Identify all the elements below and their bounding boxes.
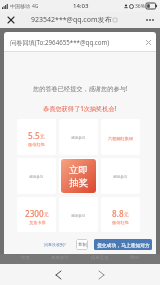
button[interactable]: 感谢参与 xyxy=(59,197,98,232)
staticText: 问卷回填(To:2964655***@qq.com) xyxy=(10,38,110,46)
staticText: 8.8 xyxy=(112,208,124,219)
staticText: 36% xyxy=(135,3,145,10)
button[interactable]: Close xyxy=(0,12,21,28)
button[interactable]: 我的 xyxy=(130,254,139,261)
staticText: 感谢参与 xyxy=(29,175,44,180)
button[interactable]: More options xyxy=(140,12,160,28)
button[interactable]: 首页 xyxy=(21,254,30,261)
button[interactable]: 感谢参与 xyxy=(59,119,98,155)
button[interactable]: 感谢参与 xyxy=(17,158,56,194)
staticText: 5.5 xyxy=(28,130,40,141)
staticText: 您的答卷已经提交，感谢您的参与! xyxy=(33,84,128,92)
button[interactable]: 立即 抽奖 xyxy=(61,159,96,193)
staticText: 复制 xyxy=(78,242,87,248)
button[interactable]: 表单设计 xyxy=(51,254,69,261)
staticText: 微信红包 xyxy=(28,142,45,147)
button[interactable]: 感谢参与 xyxy=(101,158,140,194)
button[interactable]: 问卷没收到? xyxy=(44,242,66,247)
staticText: 微信红包 xyxy=(112,220,129,225)
staticText: 立即 抽奖 xyxy=(69,164,88,188)
button[interactable]: 问卷互送 xyxy=(91,254,109,261)
button[interactable]: 提交成功，马上通知对方 xyxy=(94,239,152,250)
button[interactable]: Back xyxy=(48,264,68,285)
staticText: 恭喜您获得了1次抽奖机会! xyxy=(43,104,117,112)
button[interactable]: 六朝网红集锦 xyxy=(101,119,140,155)
button[interactable]: 2300 xyxy=(17,197,56,232)
staticText: 923542***@qq.com发布 xyxy=(31,15,112,25)
staticText: 4G xyxy=(32,3,39,10)
button[interactable]: Close page xyxy=(143,37,153,47)
staticText: 感谢参与 xyxy=(113,175,128,180)
staticText: 感谢参与 xyxy=(71,136,86,141)
staticText: 京东卡券 xyxy=(29,220,46,225)
staticText: 元 xyxy=(40,134,45,140)
staticText: 14:03 xyxy=(73,2,89,10)
staticText: 2300 xyxy=(25,208,44,219)
button[interactable]: Copy link xyxy=(76,239,88,250)
button[interactable]: 5.5 xyxy=(17,119,56,155)
staticText: 六朝网红集锦 xyxy=(108,136,134,141)
button[interactable]: 8.8 xyxy=(101,197,140,232)
button[interactable]: Forward xyxy=(91,264,111,285)
staticText: 元 xyxy=(124,212,129,218)
staticText: 元 xyxy=(44,212,49,218)
staticText: 感谢参与 xyxy=(71,214,86,219)
staticText: 提交成功，马上通知对方 xyxy=(97,242,150,248)
staticText: 中国移动 xyxy=(10,3,30,9)
